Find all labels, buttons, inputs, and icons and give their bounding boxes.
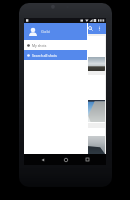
staticText: Search all shots <box>32 53 57 58</box>
button[interactable]: Recents <box>83 155 92 164</box>
button[interactable] <box>25 36 105 71</box>
button[interactable]: More options <box>96 25 103 32</box>
button[interactable]: Home <box>61 155 70 164</box>
button[interactable]: Menu <box>27 26 33 32</box>
button[interactable]: Search all shots <box>24 50 87 60</box>
staticText: Shots <box>36 25 50 32</box>
staticText: Gabi <box>41 29 51 35</box>
button[interactable]: Search <box>87 25 94 32</box>
button[interactable]: Gabi <box>24 23 87 40</box>
button[interactable]: My shots <box>24 40 87 50</box>
button[interactable] <box>25 128 105 164</box>
button[interactable] <box>25 75 105 123</box>
button[interactable]: Back <box>38 155 47 164</box>
staticText: My shots <box>32 43 47 48</box>
